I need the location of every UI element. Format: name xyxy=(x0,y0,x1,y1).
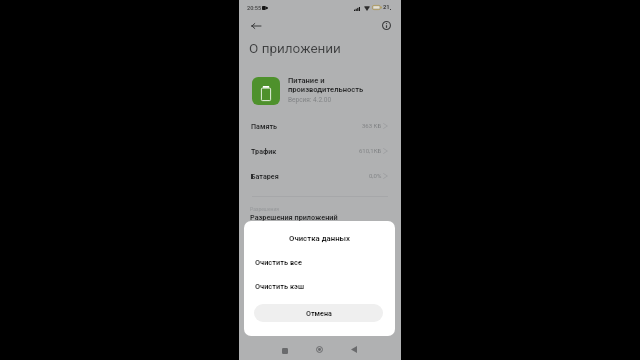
staticText: Батарея xyxy=(251,172,279,180)
staticText: производительность xyxy=(288,85,364,94)
staticText: Память xyxy=(251,122,278,130)
button[interactable]: Info xyxy=(376,15,396,35)
staticText: 21 xyxy=(383,4,390,11)
staticText: 0,0% xyxy=(369,172,382,179)
button[interactable]: Back xyxy=(246,16,266,36)
button[interactable]: Память xyxy=(239,113,401,138)
button[interactable]: Back xyxy=(346,342,361,357)
button[interactable]: Recent apps xyxy=(277,343,292,358)
staticText: О приложении xyxy=(249,40,341,56)
staticText: 363 КБ xyxy=(362,122,382,129)
button[interactable]: Очистить кэш xyxy=(244,280,395,292)
button[interactable]: Трафик xyxy=(239,138,401,163)
staticText: Разрешения приложений xyxy=(250,213,338,222)
staticText: Версия: 4.2.00 xyxy=(288,96,332,104)
button[interactable]: Очистить все xyxy=(244,256,395,268)
staticText: Питание и xyxy=(288,76,325,85)
staticText: 610,1КБ xyxy=(359,147,382,154)
staticText: Очистить кэш xyxy=(255,282,305,291)
staticText: Разрешения xyxy=(250,206,280,212)
button[interactable]: Отмена xyxy=(254,304,383,322)
staticText: 20:55 xyxy=(247,5,262,12)
staticText: Трафик xyxy=(251,147,277,155)
staticText: Очистить все xyxy=(255,258,302,267)
button[interactable]: Home xyxy=(312,342,327,357)
staticText: Отмена xyxy=(306,309,332,317)
staticText: Очистка данных xyxy=(244,234,395,243)
button[interactable]: Батарея xyxy=(239,163,401,188)
